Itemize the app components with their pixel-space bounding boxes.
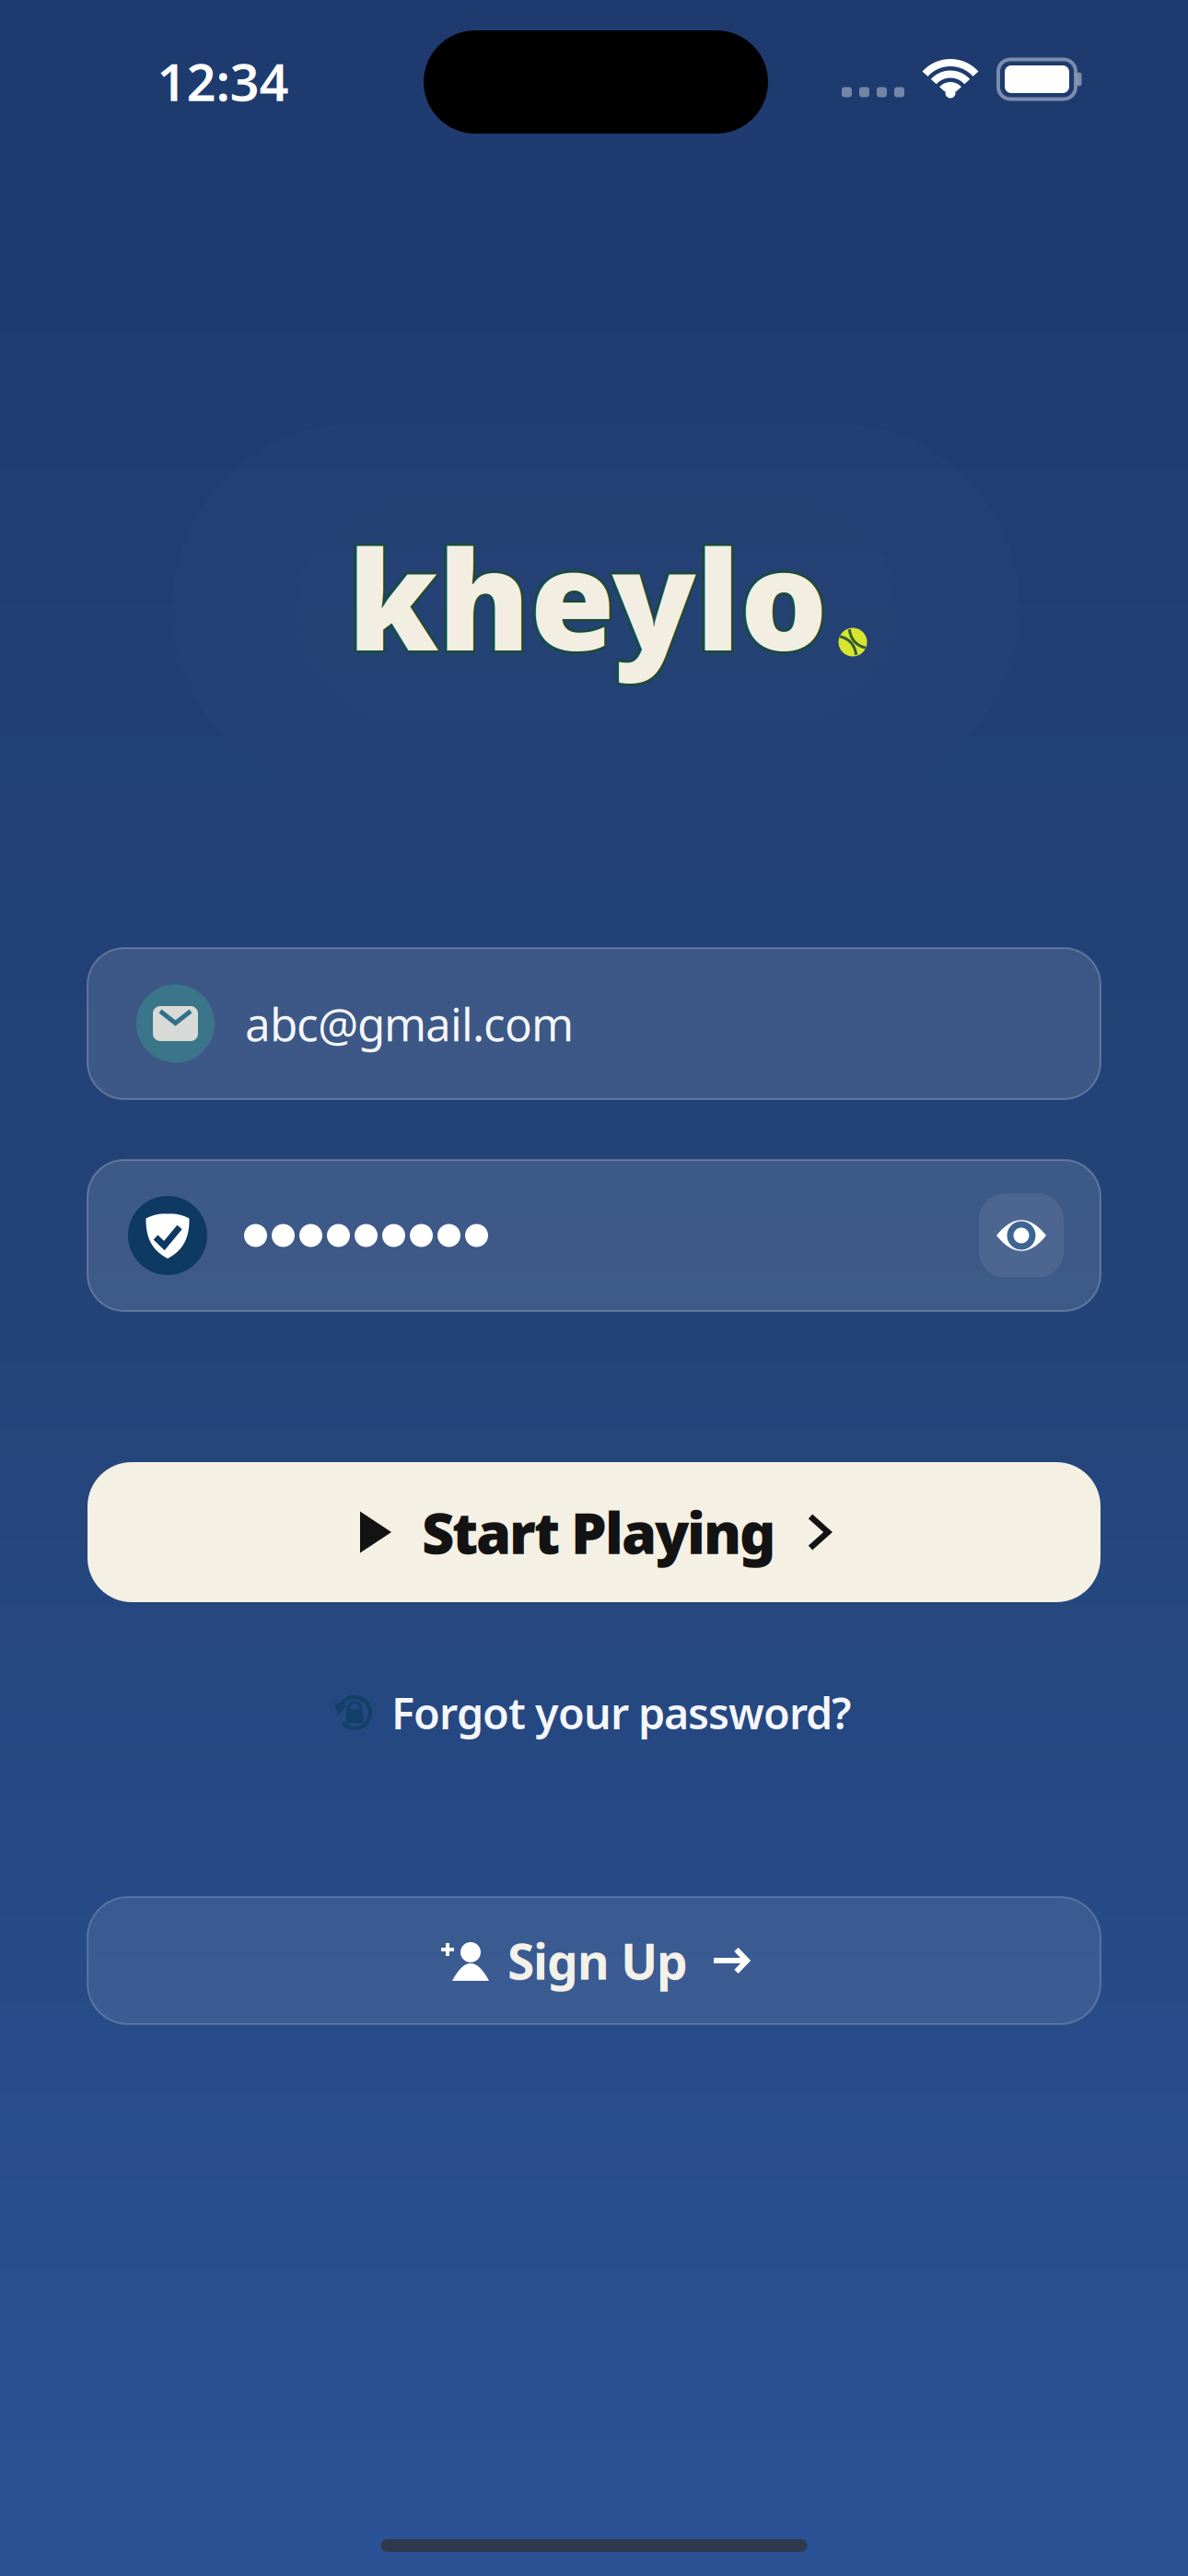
staticText: kheylo bbox=[346, 507, 826, 690]
button[interactable]: abc@gmail.com bbox=[87, 948, 1101, 1099]
staticText: kheylo bbox=[348, 508, 827, 691]
staticText: kheylo bbox=[346, 504, 826, 686]
button[interactable]: Start Playing bbox=[87, 1462, 1101, 1602]
button[interactable]: Sign Up bbox=[87, 1897, 1101, 2024]
staticText: 12:34 bbox=[157, 47, 289, 115]
staticText: kheylo bbox=[350, 506, 830, 688]
staticText: Start Playing bbox=[422, 1495, 775, 1570]
staticText: kheylo bbox=[345, 506, 825, 688]
staticText: Forgot your password? bbox=[391, 1684, 852, 1741]
staticText: abc@gmail.com bbox=[245, 993, 574, 1054]
button[interactable]: Show password bbox=[979, 1194, 1064, 1277]
staticText: kheylo bbox=[349, 507, 829, 690]
staticText: Sign Up bbox=[507, 1928, 688, 1993]
button[interactable]: Forgot your password? bbox=[336, 1684, 852, 1741]
staticText: kheylo bbox=[348, 506, 827, 688]
staticText: kheylo bbox=[349, 504, 829, 686]
button[interactable] bbox=[87, 1160, 1101, 1311]
staticText: kheylo bbox=[348, 503, 827, 686]
